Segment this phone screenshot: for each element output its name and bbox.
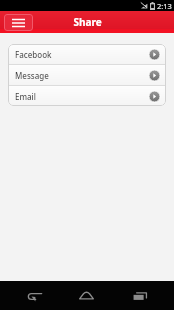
staticText: 2:13 <box>157 1 172 11</box>
button[interactable]: Back <box>8 281 60 310</box>
staticText: Share <box>73 15 102 29</box>
staticText: Email <box>15 91 36 102</box>
staticText: Message <box>15 70 49 81</box>
staticText: Facebook <box>15 49 52 60</box>
button[interactable]: Message <box>8 65 166 85</box>
button[interactable]: Open navigation menu <box>4 14 33 31</box>
button[interactable]: Email <box>8 86 166 106</box>
button[interactable]: Facebook <box>8 44 166 64</box>
button[interactable]: Home <box>60 281 113 310</box>
button[interactable]: Recent apps <box>113 281 166 310</box>
